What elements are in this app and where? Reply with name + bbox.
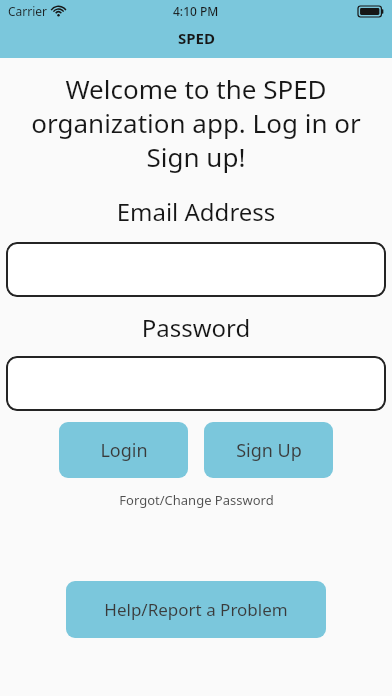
staticText: Forgot/Change Password	[119, 491, 274, 509]
button[interactable]: Help/Report a Problem	[66, 581, 326, 638]
other: Battery full	[358, 6, 384, 17]
staticText: Password	[0, 311, 392, 344]
button[interactable]: Text input	[6, 242, 386, 297]
staticText: Welcome to the SPED organization app. Lo…	[13, 71, 379, 174]
staticText: 4:10 PM	[173, 3, 219, 19]
button[interactable]: Login	[59, 422, 188, 478]
button[interactable]: Forgot/Change Password	[0, 491, 392, 509]
staticText: Carrier	[8, 3, 48, 19]
staticText: Email Address	[0, 195, 392, 228]
button[interactable]: Text input	[6, 356, 386, 411]
button[interactable]: Sign Up	[204, 422, 333, 478]
other: Wi-Fi signal	[52, 6, 65, 16]
staticText: SPED	[178, 28, 215, 48]
staticText: Sign Up	[236, 438, 302, 463]
staticText: Login	[100, 438, 148, 463]
staticText: Help/Report a Problem	[104, 598, 288, 621]
